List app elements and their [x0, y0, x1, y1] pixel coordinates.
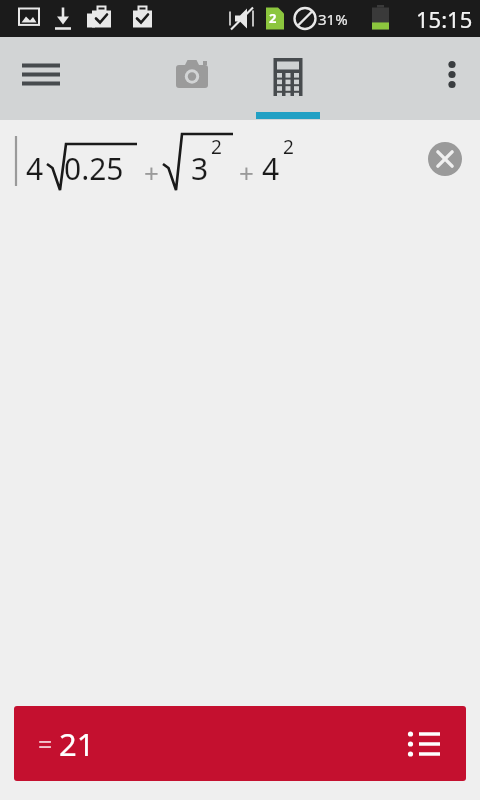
staticText: 21 — [59, 723, 95, 765]
staticText: 2 — [211, 134, 222, 160]
staticText: 15:15 — [416, 4, 473, 34]
button[interactable]: = — [14, 706, 466, 781]
staticText: 3 — [191, 148, 209, 189]
staticText: + — [144, 155, 159, 190]
button[interactable]: Menu — [16, 37, 66, 112]
staticText: + — [239, 155, 254, 190]
button[interactable]: Show steps — [404, 724, 444, 764]
button[interactable]: Calculator — [256, 37, 320, 120]
button[interactable]: Clear — [428, 142, 462, 176]
staticText: 4 — [262, 148, 280, 189]
button[interactable]: Camera — [160, 37, 224, 112]
staticText: = — [38, 727, 53, 761]
staticText: 0.25 — [64, 148, 124, 189]
staticText: 31% — [318, 9, 348, 29]
staticText: 2 — [283, 134, 294, 160]
staticText: 4 — [26, 148, 44, 189]
staticText: 2 — [269, 9, 277, 27]
button[interactable]: More options — [428, 37, 480, 112]
